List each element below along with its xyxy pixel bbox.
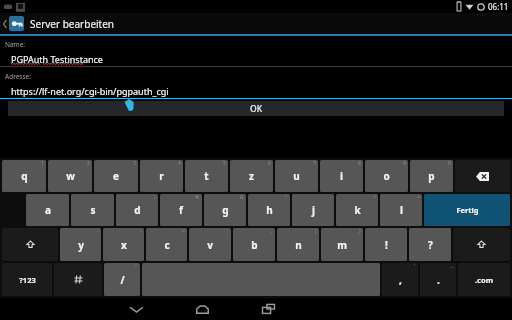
staticText: 2: [87, 160, 90, 167]
staticText: Adresse:: [5, 72, 32, 81]
button[interactable]: w: [48, 160, 92, 192]
staticText: g: [222, 203, 229, 217]
staticText: c: [164, 238, 170, 252]
staticText: ?: [428, 238, 433, 252]
button[interactable]: b: [233, 228, 275, 261]
staticText: u: [293, 169, 300, 183]
staticText: e: [113, 169, 119, 183]
staticText: 9: [403, 160, 406, 167]
button[interactable]: App: [9, 16, 24, 31]
staticText: z: [249, 169, 254, 183]
button[interactable]: Tastatureinstellungen: [54, 263, 102, 296]
staticText: j: [312, 203, 315, 217]
button[interactable]: h: [248, 194, 290, 226]
button[interactable]: f: [160, 194, 202, 226]
staticText: i: [340, 169, 343, 183]
button[interactable]: u: [275, 160, 318, 192]
staticText: ‹: [97, 228, 99, 235]
staticText: q: [21, 169, 28, 183]
staticText: ": [285, 194, 288, 201]
staticText: PGPAuth Testinstance: [11, 53, 103, 65]
button[interactable]: r: [140, 160, 183, 192]
staticText: %: [195, 194, 200, 201]
staticText: d: [134, 203, 141, 217]
staticText: b: [251, 238, 258, 252]
staticText: x: [121, 238, 127, 252]
button[interactable]: ,: [382, 263, 418, 296]
staticText: 0: [448, 160, 451, 167]
button[interactable]: .: [420, 263, 456, 296]
button[interactable]: l: [380, 194, 422, 226]
button[interactable]: j: [292, 194, 334, 226]
button[interactable]: Umschalttaste: [453, 228, 510, 261]
staticText: 8: [358, 160, 361, 167]
button[interactable]: Zurück: [0, 13, 9, 34]
button[interactable]: /: [104, 263, 140, 296]
button[interactable]: https://lf-net.org/cgi-bin/pgpauth_cgi: [0, 83, 512, 98]
staticText: /: [120, 273, 125, 287]
staticText: °: [135, 263, 138, 270]
staticText: ': [414, 263, 416, 270]
button[interactable]: Umschalttaste: [2, 228, 58, 261]
staticText: =: [417, 194, 420, 201]
staticText: (: [315, 228, 317, 235]
staticText: 1: [41, 160, 44, 167]
staticText: 4: [178, 160, 181, 167]
button[interactable]: p: [410, 160, 453, 192]
staticText: :: [227, 228, 229, 235]
staticText: 3: [133, 160, 136, 167]
button[interactable]: e: [94, 160, 138, 192]
button[interactable]: .com: [458, 263, 510, 296]
button[interactable]: Startseite: [169, 298, 235, 320]
button[interactable]: i: [320, 160, 363, 192]
button[interactable]: !: [365, 228, 407, 261]
staticText: p: [428, 169, 435, 183]
button[interactable]: x: [103, 228, 144, 261]
staticText: v: [207, 238, 213, 252]
button[interactable]: q: [2, 160, 46, 192]
button[interactable]: s: [71, 194, 114, 226]
button[interactable]: g: [204, 194, 246, 226]
button[interactable]: a: [26, 194, 69, 226]
staticText: h: [266, 203, 273, 217]
staticText: s: [90, 203, 96, 217]
button[interactable]: PGPAuth Testinstance: [0, 52, 512, 66]
button[interactable]: v: [189, 228, 231, 261]
button[interactable]: c: [146, 228, 187, 261]
staticText: w: [66, 169, 75, 183]
button[interactable]: m: [321, 228, 363, 261]
button[interactable]: Übersicht: [235, 298, 301, 320]
staticText: 06:11: [488, 1, 509, 12]
staticText: =: [182, 228, 185, 235]
staticText: k: [354, 203, 361, 217]
button[interactable]: z: [230, 160, 273, 192]
staticText: 6: [268, 160, 271, 167]
button[interactable]: OK: [8, 101, 504, 116]
staticText: y: [78, 238, 84, 252]
button[interactable]: d: [116, 194, 158, 226]
staticText: f: [179, 203, 183, 217]
button[interactable]: ?: [409, 228, 451, 261]
button[interactable]: k: [336, 194, 378, 226]
staticText: n: [295, 238, 302, 252]
staticText: -: [330, 194, 332, 201]
staticText: ;: [271, 228, 273, 235]
button[interactable]: ?123: [2, 263, 52, 296]
staticText: l: [400, 203, 403, 217]
staticText: Server bearbeiten: [30, 17, 115, 31]
button[interactable]: n: [277, 228, 319, 261]
button[interactable]: Rücktaste: [455, 160, 510, 192]
staticText: ?123: [19, 275, 36, 285]
button[interactable]: y: [60, 228, 101, 261]
staticText: Name:: [5, 40, 26, 49]
button[interactable]: o: [365, 160, 408, 192]
staticText: ›: [140, 228, 142, 235]
staticText: 5: [223, 160, 226, 167]
button[interactable]: Fertig: [424, 194, 510, 226]
staticText: !: [385, 238, 388, 252]
staticText: m: [337, 238, 347, 252]
button[interactable]: t: [185, 160, 228, 192]
staticText: ,: [399, 273, 402, 287]
button[interactable]: Tastatur ausblenden: [103, 298, 169, 320]
